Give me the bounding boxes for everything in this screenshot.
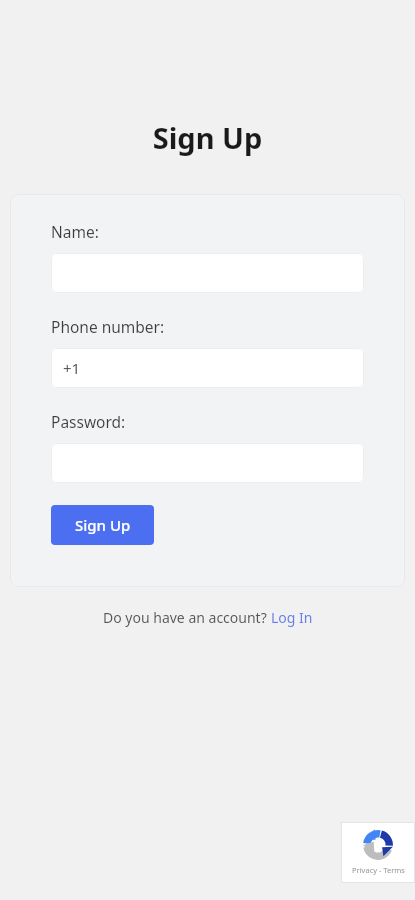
- button[interactable]: [51, 443, 364, 483]
- button[interactable]: Log In: [271, 608, 313, 627]
- button[interactable]: [51, 253, 364, 293]
- button[interactable]: reCAPTCHA Privacy and Terms: [341, 822, 415, 883]
- button[interactable]: Sign Up: [51, 505, 154, 545]
- staticText: Log In: [271, 608, 313, 627]
- staticText: Phone number:: [51, 316, 165, 337]
- staticText: Do you have an account?: [103, 608, 271, 627]
- button[interactable]: +1: [51, 348, 364, 388]
- staticText: Privacy - Terms: [352, 865, 405, 875]
- staticText: Name:: [51, 221, 99, 242]
- staticText: Password:: [51, 411, 126, 432]
- staticText: +1: [63, 358, 81, 378]
- staticText: Sign Up: [0, 118, 415, 157]
- staticText: Sign Up: [75, 515, 131, 535]
